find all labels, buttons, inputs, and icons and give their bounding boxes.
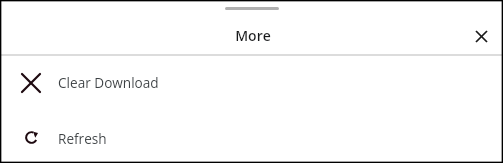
staticText: Refresh [58, 129, 107, 148]
button[interactable]: Refresh [0, 110, 503, 163]
staticText: Clear Download [58, 73, 159, 92]
button[interactable]: Clear Download [0, 54, 503, 111]
staticText: More [235, 26, 271, 45]
button[interactable]: Close [466, 21, 496, 51]
